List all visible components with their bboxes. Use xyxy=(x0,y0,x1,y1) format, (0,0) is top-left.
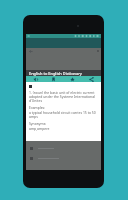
button[interactable]: Back xyxy=(28,48,34,54)
staticText: Examples: xyxy=(29,105,46,110)
button[interactable] xyxy=(26,155,101,161)
button[interactable] xyxy=(26,145,101,151)
button[interactable]: Pronounce xyxy=(26,76,44,82)
button[interactable]: Share xyxy=(82,76,101,82)
staticText: English to English Dictionary xyxy=(29,71,82,76)
button[interactable]: English to English Dictionary xyxy=(26,70,101,76)
staticText: a typical household circuit carries 15 t… xyxy=(29,110,97,119)
staticText: amp,ampere xyxy=(29,126,50,131)
staticText: Synonyms: xyxy=(29,121,47,126)
button[interactable]: Favorite xyxy=(63,76,82,82)
button[interactable]: Bookmark xyxy=(44,76,63,82)
staticText: 1. (noun) the basic unit of electric cur… xyxy=(29,90,97,103)
button[interactable]: More options xyxy=(96,49,100,53)
